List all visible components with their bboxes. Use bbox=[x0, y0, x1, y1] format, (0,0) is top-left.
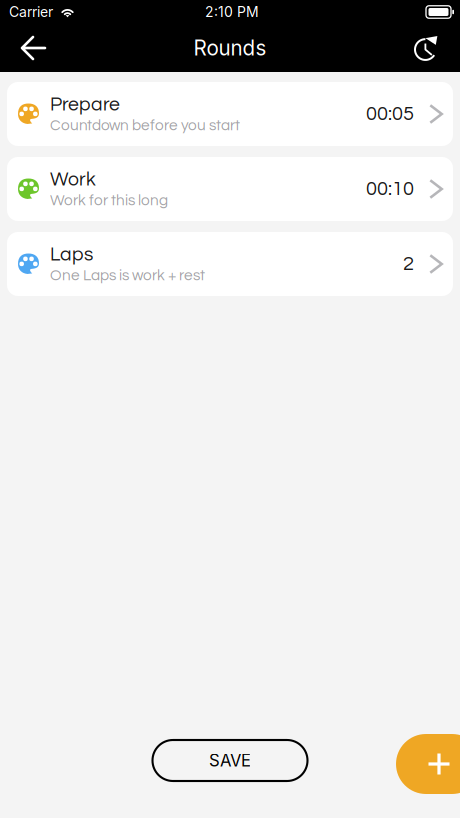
staticText: Work bbox=[50, 170, 96, 189]
staticText: Countdown before you start bbox=[50, 118, 240, 133]
staticText: Carrier bbox=[9, 3, 53, 20]
staticText: 2 bbox=[403, 254, 414, 274]
staticText: Laps bbox=[50, 245, 93, 264]
staticText: One Laps is work + rest bbox=[50, 268, 205, 283]
button[interactable]: Back bbox=[10, 25, 56, 71]
staticText: Work for this long bbox=[50, 193, 168, 208]
button[interactable]: SAVE bbox=[152, 740, 307, 781]
staticText: Rounds bbox=[193, 35, 266, 60]
button[interactable]: Add round bbox=[396, 734, 460, 794]
button[interactable]: Prepare bbox=[7, 82, 453, 146]
staticText: Prepare bbox=[50, 95, 120, 114]
button[interactable]: Laps bbox=[7, 232, 453, 296]
staticText: SAVE bbox=[209, 750, 251, 771]
staticText: 2:10 PM bbox=[205, 3, 259, 20]
button[interactable]: Reset bbox=[405, 25, 451, 71]
button[interactable]: Work bbox=[7, 157, 453, 221]
staticText: 00:05 bbox=[366, 104, 414, 124]
staticText: 00:10 bbox=[366, 179, 414, 199]
